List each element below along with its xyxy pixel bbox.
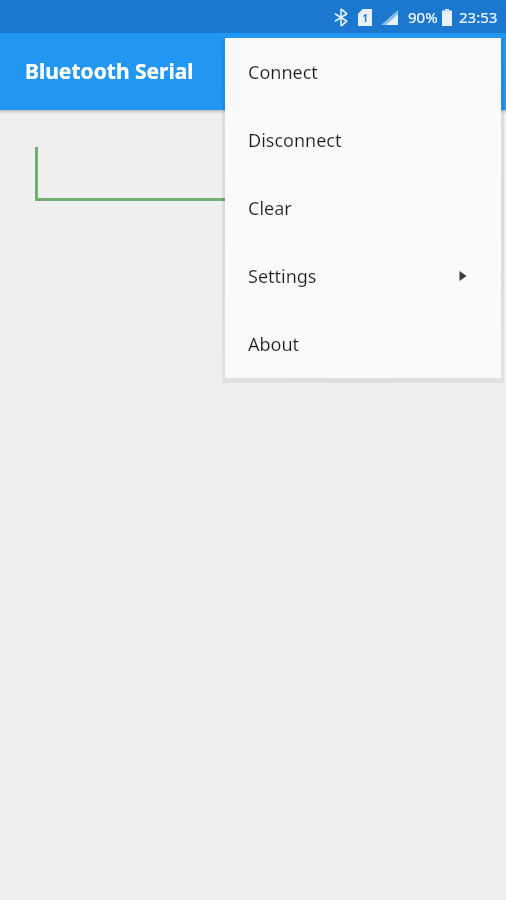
button[interactable]: Settings bbox=[225, 242, 501, 310]
staticText: 1 bbox=[362, 11, 368, 25]
staticText: About bbox=[248, 332, 300, 357]
staticText: Clear bbox=[248, 196, 292, 221]
button[interactable]: About bbox=[225, 310, 501, 378]
staticText: Connect bbox=[248, 60, 318, 85]
staticText: Settings bbox=[248, 264, 317, 289]
other: Mobile signal bbox=[381, 10, 398, 25]
staticText: Disconnect bbox=[248, 128, 342, 153]
other: Battery 90 percent bbox=[442, 9, 452, 26]
button[interactable]: Connect bbox=[225, 38, 501, 106]
staticText: 90% bbox=[408, 7, 438, 27]
button[interactable]: Clear bbox=[225, 174, 501, 242]
other: Bluetooth bbox=[335, 9, 347, 26]
other: SIM card 1 bbox=[358, 9, 372, 26]
staticText: Bluetooth Serial bbox=[25, 57, 194, 86]
button[interactable]: Disconnect bbox=[225, 106, 501, 174]
staticText: 23:53 bbox=[459, 7, 498, 27]
